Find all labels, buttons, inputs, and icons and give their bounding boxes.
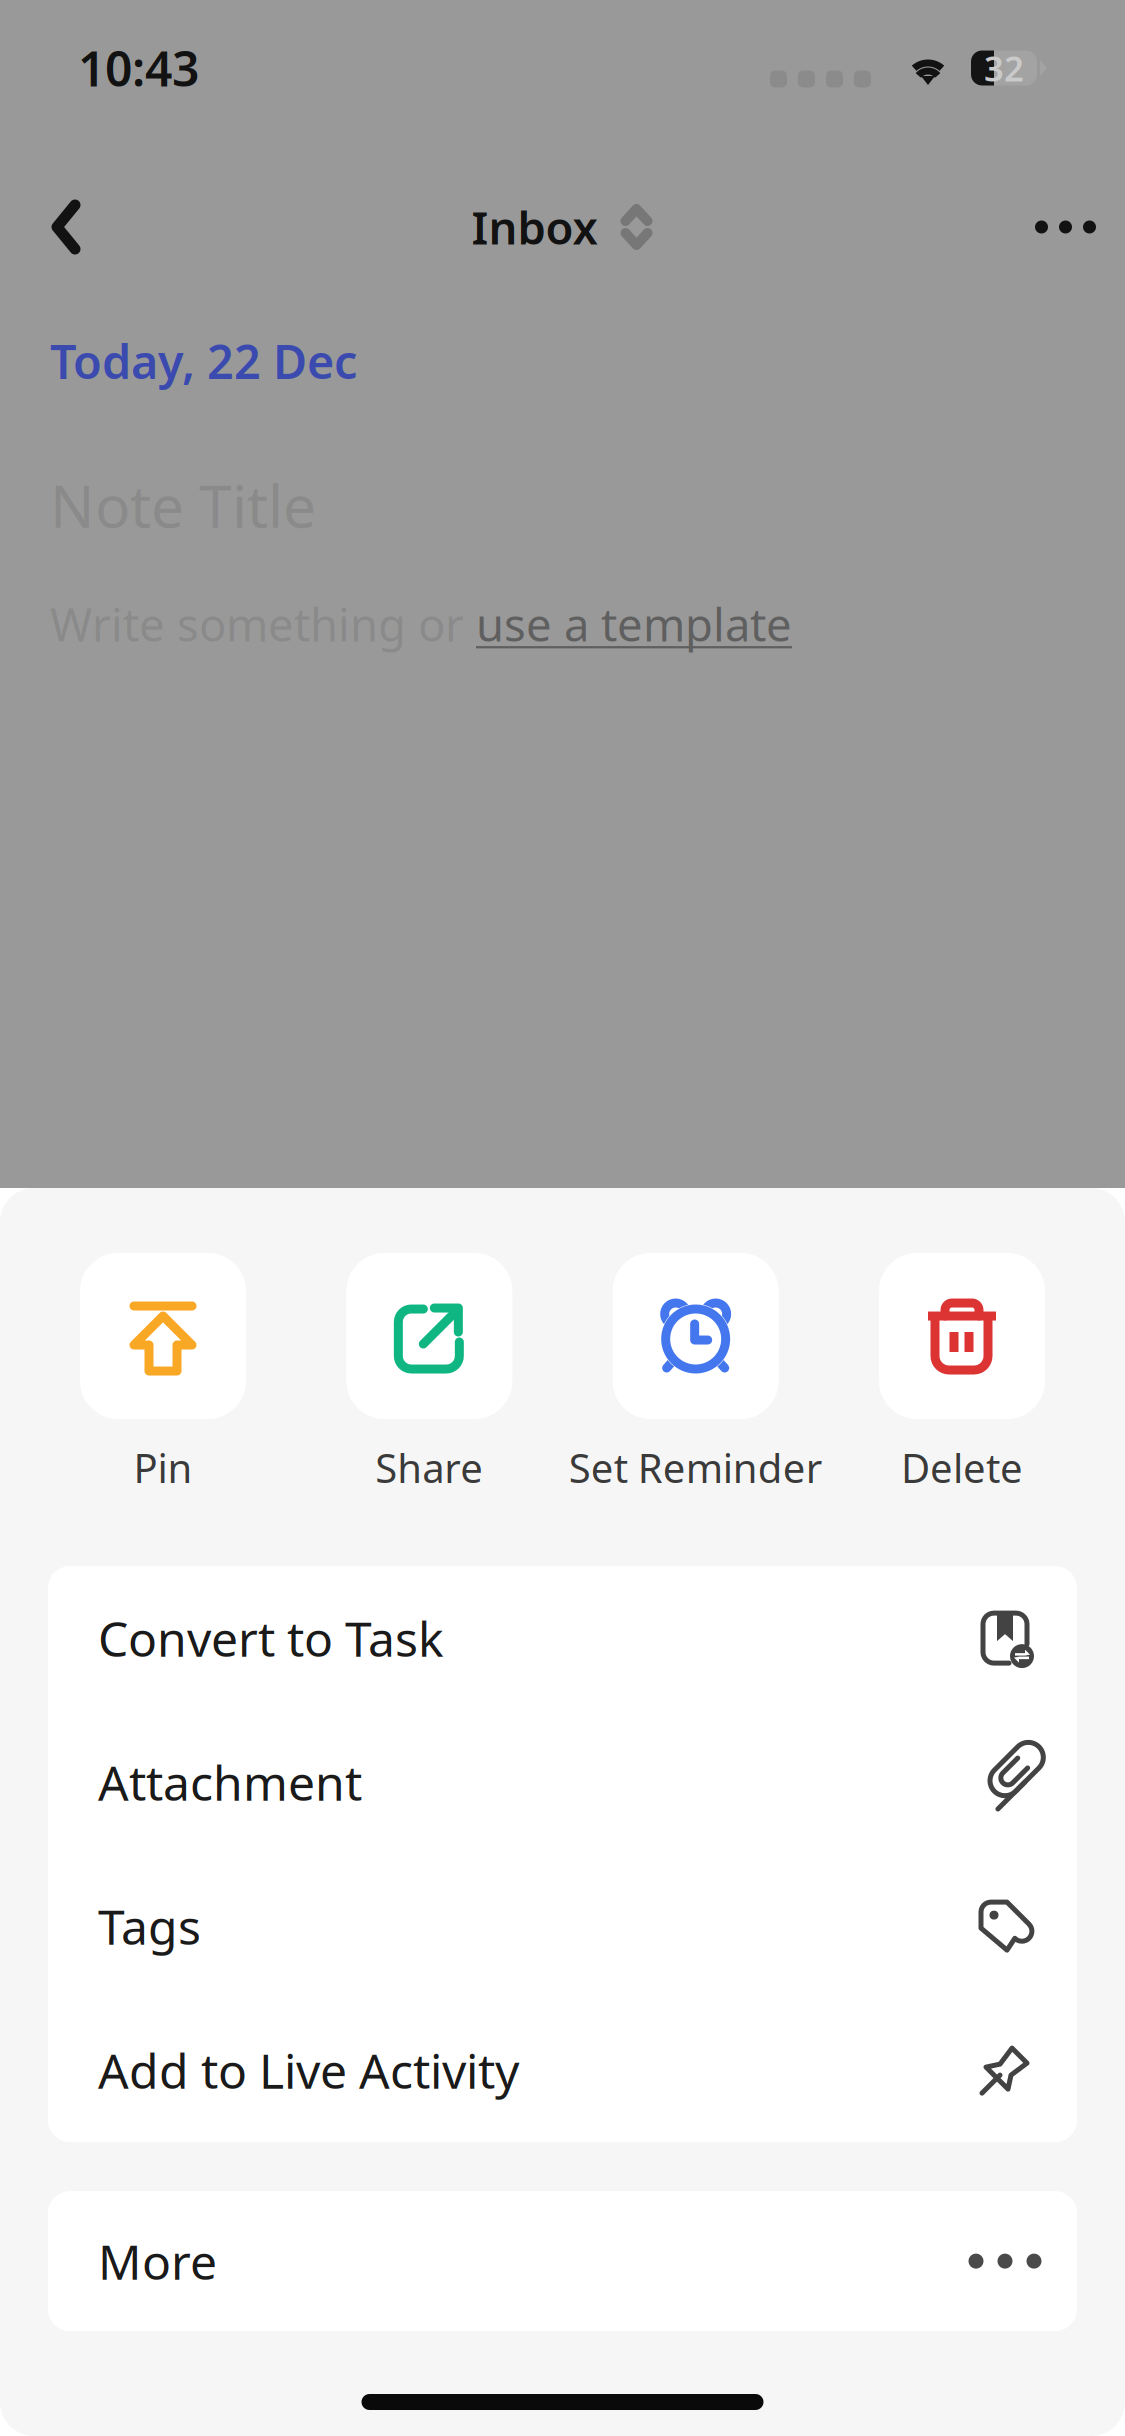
button[interactable]: Share bbox=[346, 1253, 512, 1494]
staticText: Share bbox=[375, 1441, 483, 1494]
staticText: Attachment bbox=[98, 1750, 362, 1814]
button[interactable]: More actions bbox=[1028, 176, 1103, 277]
staticText: Write something or bbox=[50, 594, 476, 654]
staticText: 32 bbox=[984, 45, 1024, 91]
button[interactable]: Attachment bbox=[48, 1710, 1077, 1854]
staticText: Delete bbox=[901, 1441, 1023, 1494]
button[interactable]: Tags bbox=[48, 1854, 1077, 1998]
button[interactable]: Pin bbox=[80, 1253, 246, 1494]
button[interactable]: Back bbox=[22, 173, 112, 281]
staticText: Convert to Task bbox=[98, 1606, 444, 1670]
staticText: Inbox bbox=[471, 197, 597, 257]
button[interactable]: More bbox=[48, 2191, 1077, 2331]
button[interactable]: Convert to Task bbox=[48, 1566, 1077, 1710]
staticText: Tags bbox=[98, 1894, 201, 1958]
staticText: 10:43 bbox=[78, 36, 199, 100]
staticText: Today, 22 Dec bbox=[50, 330, 357, 392]
button[interactable]: Inbox bbox=[451, 183, 673, 271]
staticText: Pin bbox=[133, 1441, 192, 1494]
staticText: use a template bbox=[476, 594, 792, 654]
button[interactable]: Set Reminder bbox=[613, 1253, 779, 1494]
staticText: More bbox=[98, 2229, 217, 2293]
button[interactable]: Add to Live Activity bbox=[48, 1998, 1077, 2142]
button[interactable]: Delete bbox=[879, 1253, 1045, 1494]
staticText: Set Reminder bbox=[569, 1441, 823, 1494]
staticText: Note Title bbox=[50, 466, 316, 544]
staticText: Add to Live Activity bbox=[98, 2038, 519, 2102]
